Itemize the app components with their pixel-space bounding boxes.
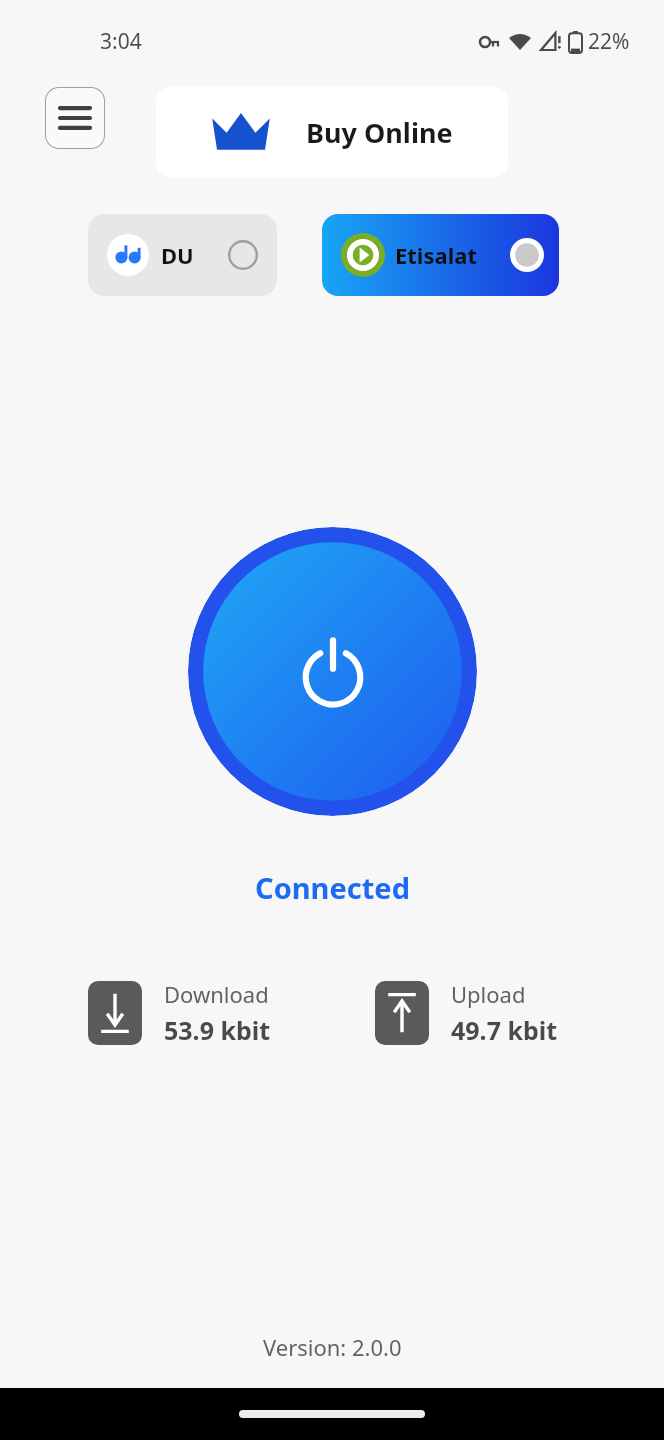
staticText: Upload	[451, 979, 526, 1009]
staticText: Buy Online	[306, 114, 453, 151]
staticText: 53.9 kbit	[164, 1013, 271, 1047]
staticText: Etisalat	[395, 240, 477, 270]
staticText: Connected	[255, 868, 410, 907]
staticText: 22%	[588, 27, 630, 56]
button[interactable]: DU	[88, 214, 277, 296]
staticText: 49.7 kbit	[451, 1013, 558, 1047]
button[interactable]: Buy Online	[156, 86, 508, 178]
button[interactable]: Download	[88, 981, 142, 1045]
staticText: 3:04	[100, 27, 142, 56]
staticText: Version: 2.0.0	[263, 1332, 402, 1362]
button[interactable]: Upload	[375, 981, 429, 1045]
staticText: DU	[161, 240, 194, 270]
button[interactable]: Menu	[45, 87, 105, 149]
button[interactable]: Etisalat	[322, 214, 559, 296]
button[interactable]: Power toggle	[188, 527, 477, 816]
staticText: Download	[164, 979, 269, 1009]
